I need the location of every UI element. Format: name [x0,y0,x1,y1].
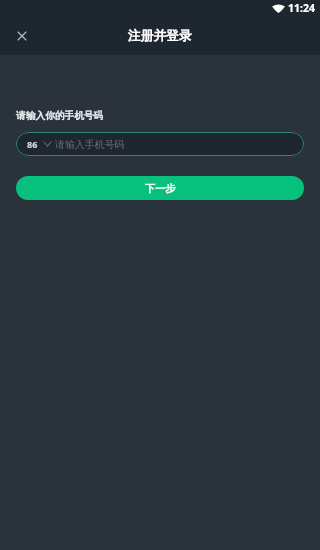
button[interactable]: 请输入手机号码 [55,132,304,156]
staticText: 注册并登录 [128,28,192,44]
button[interactable]: Close [6,20,38,52]
staticText: 86 [27,138,38,150]
button[interactable]: 下一步 [16,176,304,200]
staticText: 11:24 [288,1,315,15]
staticText: 请输入手机号码 [55,138,125,150]
button[interactable]: 86 [16,132,55,156]
staticText: 下一步 [145,182,176,195]
staticText: 请输入你的手机号码 [16,110,104,122]
